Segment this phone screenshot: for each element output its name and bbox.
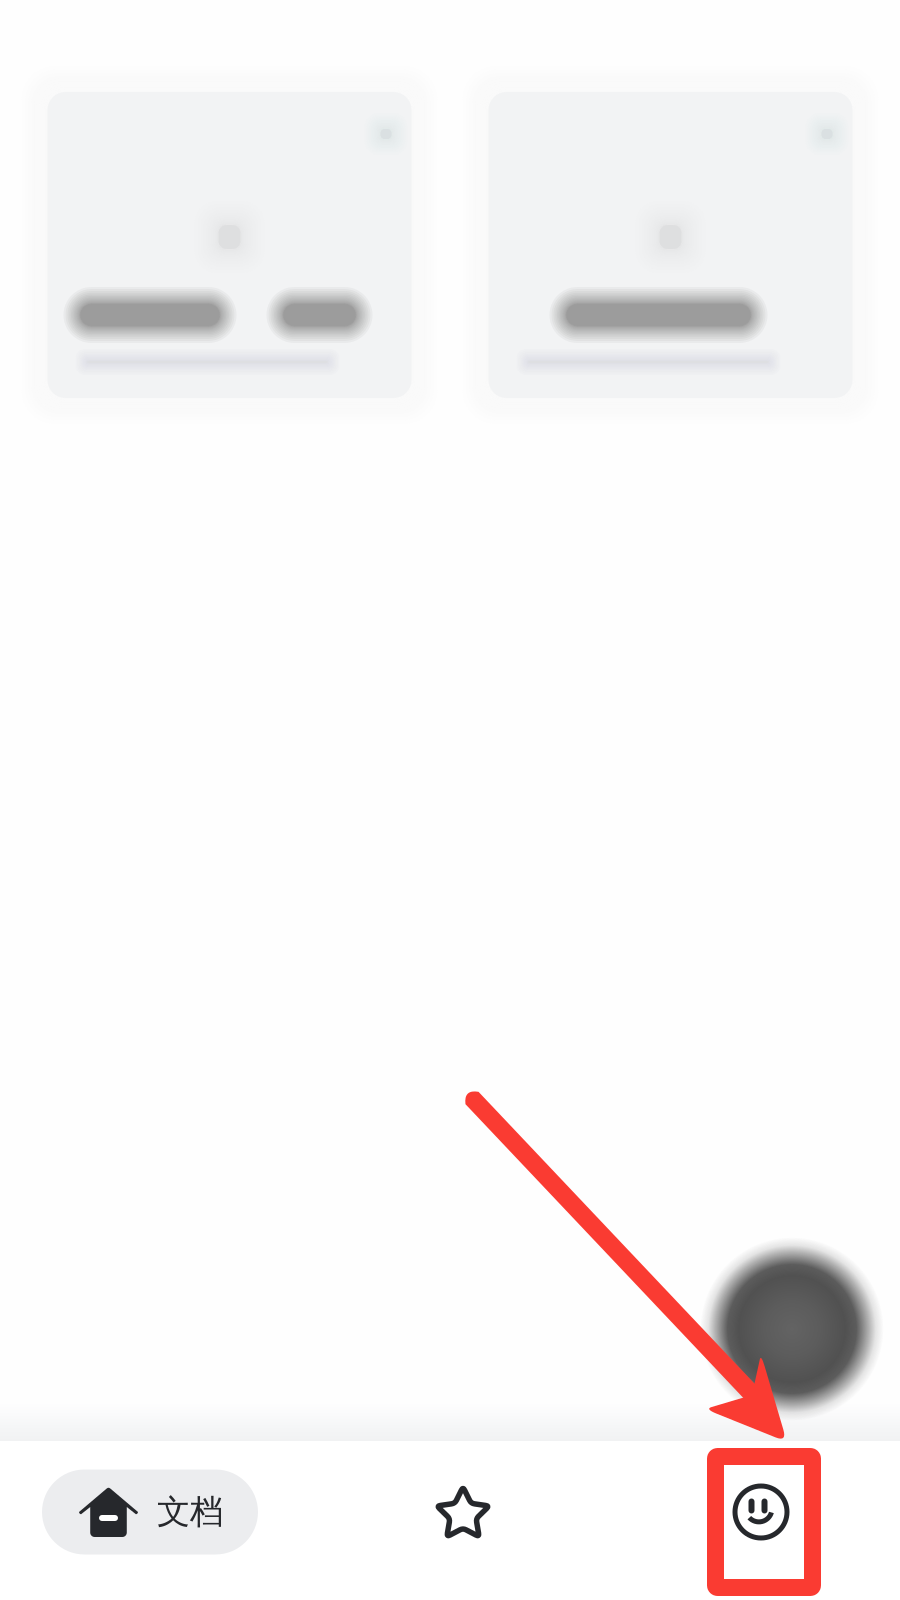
button[interactable] [27, 73, 431, 417]
button[interactable]: 文档 [42, 1469, 258, 1554]
button[interactable] [468, 73, 872, 417]
button[interactable]: New document [700, 1237, 884, 1421]
button[interactable]: Profile [701, 1464, 821, 1560]
button[interactable]: Favourites [403, 1464, 523, 1560]
staticText: 文档 [157, 1491, 223, 1532]
